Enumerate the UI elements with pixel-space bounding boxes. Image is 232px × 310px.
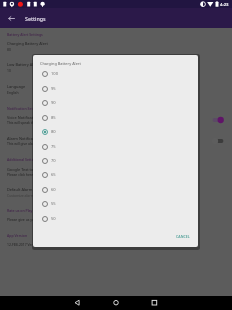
button[interactable]: CANCEL <box>172 231 194 242</box>
button[interactable]: 90 <box>33 96 198 110</box>
button[interactable]: 60 <box>33 183 198 197</box>
staticText: Notification Settings <box>7 106 42 111</box>
staticText: Charging Battery Alert <box>7 41 48 46</box>
staticText: App Version <box>7 233 28 238</box>
button[interactable]: 50 <box>33 212 198 226</box>
button[interactable]: Back <box>67 297 87 309</box>
staticText: 10 <box>7 68 11 73</box>
staticText: Customize alarm ringtone <box>7 193 49 198</box>
staticText: Alarm Notification <box>7 136 41 141</box>
button[interactable]: 80 <box>33 125 198 139</box>
button[interactable]: Please give us your valuable feedback <box>7 217 68 222</box>
staticText: 12-FEB-2017 Ver 1.2 <box>7 242 39 247</box>
button[interactable]: 85 <box>33 111 198 125</box>
staticText: Please click here to open settings <box>7 172 60 177</box>
staticText: This will give alarm on battery status <box>7 141 66 146</box>
button[interactable]: 75 <box>33 140 198 154</box>
staticText: Additional Settings <box>7 157 39 162</box>
button[interactable]: Toggle on <box>208 113 228 127</box>
staticText: 85 <box>51 115 56 121</box>
button[interactable]: 95 <box>33 82 198 96</box>
staticText: 60 <box>51 187 56 193</box>
staticText: Rate us on Play Store <box>7 208 43 213</box>
button[interactable]: 55 <box>33 197 198 211</box>
button[interactable]: 100 <box>33 67 198 81</box>
staticText: Settings <box>25 15 46 22</box>
staticText: 75 <box>51 144 56 150</box>
button[interactable]: Recents <box>144 297 164 309</box>
staticText: Battery Alert Settings <box>7 32 43 37</box>
staticText: 50 <box>51 216 56 222</box>
staticText: 80 <box>51 129 56 135</box>
staticText: Language <box>7 84 26 89</box>
button[interactable]: 70 <box>33 154 198 168</box>
button[interactable]: Toggle off <box>208 134 228 148</box>
staticText: Default Alarm Ringtone <box>7 187 50 192</box>
staticText: English <box>7 90 19 95</box>
staticText: 100 <box>51 71 59 77</box>
staticText: 80 <box>7 47 11 52</box>
staticText: 55 <box>51 201 56 207</box>
button[interactable]: Back <box>5 12 18 25</box>
staticText: 90 <box>51 100 56 106</box>
staticText: Google Text to Speech Settings <box>7 167 64 172</box>
staticText: Voice Notification <box>7 115 39 120</box>
staticText: 70 <box>51 158 56 164</box>
button[interactable]: 65 <box>33 168 198 182</box>
staticText: 65 <box>51 172 56 178</box>
staticText: Low Battery Alert <box>7 62 39 67</box>
staticText: This will speak the battery status <box>7 120 59 125</box>
staticText: CANCEL <box>176 234 190 239</box>
staticText: 95 <box>51 86 56 92</box>
button[interactable]: Home <box>106 297 126 309</box>
staticText: 4:23 <box>220 1 229 7</box>
staticText: Charging Battery Alert <box>40 61 81 66</box>
